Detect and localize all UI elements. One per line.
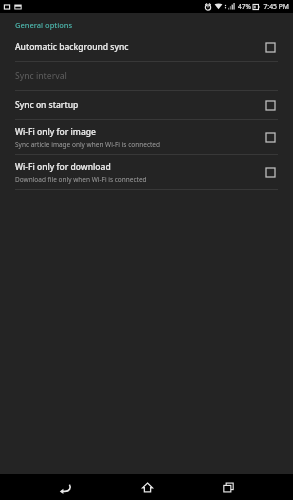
staticText: 47% — [238, 2, 251, 11]
button[interactable]: Wi-Fi only for download — [0, 155, 293, 189]
staticText: Sync on startup — [15, 99, 79, 111]
button[interactable]: Back — [48, 474, 82, 500]
button[interactable]: Sync interval — [0, 62, 293, 90]
button[interactable]: Wi-Fi only for image — [260, 127, 280, 147]
button[interactable]: Sync on startup — [0, 91, 293, 119]
button[interactable]: Wi-Fi only for download — [260, 162, 280, 182]
staticText: Wi-Fi only for download — [15, 161, 111, 173]
button[interactable]: Home — [130, 474, 164, 500]
staticText: Sync interval — [15, 70, 67, 82]
button[interactable]: Wi-Fi only for image — [0, 120, 293, 154]
staticText: Automatic background sync — [15, 41, 129, 53]
button[interactable]: Automatic background sync — [260, 37, 280, 57]
button[interactable]: Sync on startup — [260, 95, 280, 115]
staticText: General options — [15, 20, 73, 30]
staticText: Wi-Fi only for image — [15, 126, 96, 138]
button[interactable]: Recent apps — [211, 474, 245, 500]
button[interactable]: Automatic background sync — [0, 33, 293, 61]
staticText: 7:45 PM — [263, 2, 289, 11]
staticText: Download file only when Wi-Fi is connect… — [15, 175, 147, 184]
staticText: Sync article image only when Wi-Fi is co… — [15, 140, 161, 149]
